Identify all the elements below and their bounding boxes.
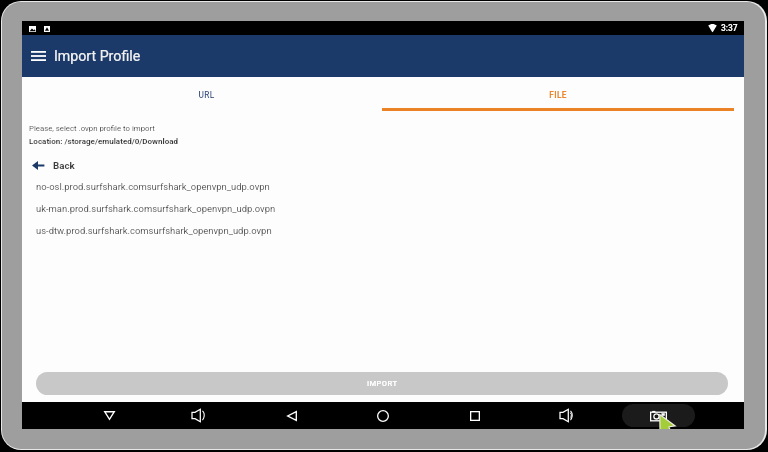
button[interactable]: Volume up bbox=[552, 402, 580, 429]
button[interactable]: no-osl.prod.surfshark.comsurfshark_openv… bbox=[22, 175, 744, 197]
button[interactable]: us-dtw.prod.surfshark.comsurfshark_openv… bbox=[22, 219, 744, 241]
button[interactable]: URL bbox=[30, 77, 382, 112]
staticText: URL bbox=[198, 90, 215, 100]
staticText: FILE bbox=[549, 90, 567, 100]
button[interactable]: IMPORT bbox=[36, 372, 728, 395]
staticText: Location: /storage/emulated/0/Download bbox=[29, 137, 179, 146]
button[interactable]: Back bbox=[32, 155, 92, 175]
button[interactable]: Back bbox=[278, 402, 306, 429]
staticText: Please, select .ovpn profile to import bbox=[29, 124, 155, 133]
button[interactable]: Open navigation menu bbox=[23, 41, 53, 71]
button[interactable]: Volume down bbox=[184, 402, 212, 429]
button[interactable]: FILE bbox=[382, 77, 734, 112]
button[interactable]: Hide keyboard bbox=[95, 402, 123, 429]
staticText: uk-man.prod.surfshark.comsurfshark_openv… bbox=[36, 203, 276, 214]
staticText: Import Profile bbox=[54, 48, 141, 65]
staticText: IMPORT bbox=[367, 379, 398, 388]
staticText: no-osl.prod.surfshark.comsurfshark_openv… bbox=[36, 181, 270, 192]
staticText: Back bbox=[53, 160, 75, 171]
button[interactable]: Home bbox=[369, 402, 397, 429]
button[interactable]: Take screenshot bbox=[644, 402, 672, 429]
staticText: 3:37 bbox=[721, 23, 738, 33]
staticText: us-dtw.prod.surfshark.comsurfshark_openv… bbox=[36, 225, 272, 236]
button[interactable]: Recent apps bbox=[461, 402, 489, 429]
button[interactable]: uk-man.prod.surfshark.comsurfshark_openv… bbox=[22, 197, 744, 219]
